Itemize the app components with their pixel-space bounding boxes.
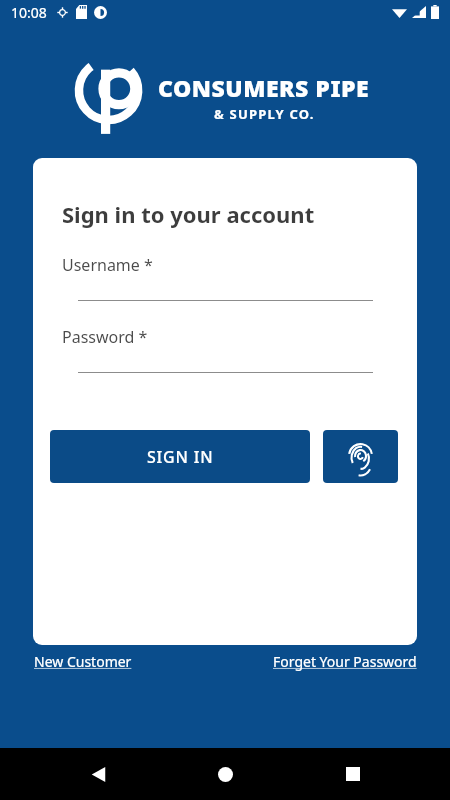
staticText: & SUPPLY CO. [214,105,315,123]
button[interactable]: Forget Your Password [273,652,417,671]
staticText: Password * [62,326,148,348]
staticText: Sign in to your account [62,199,315,229]
button[interactable]: Sign in with fingerprint [323,430,398,483]
button[interactable]: Recent apps [337,758,369,790]
button[interactable]: Home [209,758,241,790]
button[interactable]: Back [82,758,114,790]
staticText: Forget Your Password [273,652,417,671]
button[interactable]: SIGN IN [50,430,310,483]
staticText: CONSUMERS PIPE [158,72,370,103]
staticText: New Customer [34,652,132,671]
staticText: SIGN IN [147,446,214,468]
button[interactable]: New Customer [34,652,132,671]
staticText: Username * [62,254,153,276]
staticText: 10:08 [11,3,47,22]
